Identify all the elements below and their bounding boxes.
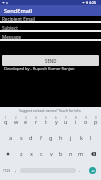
staticText: x	[30, 150, 33, 158]
staticText: 4	[35, 116, 37, 120]
button[interactable]: 9	[81, 114, 91, 130]
staticText: Recipient Email	[2, 16, 35, 21]
button[interactable]: s	[16, 130, 26, 146]
staticText: 7	[65, 116, 67, 120]
staticText: n	[69, 150, 73, 158]
staticText: Suggest contact names? Touch for info.	[19, 108, 82, 113]
button[interactable]: Enter	[89, 167, 96, 174]
staticText: .	[79, 167, 81, 173]
button[interactable]: Comma	[13, 162, 19, 178]
staticText: z	[20, 150, 23, 158]
staticText: 6	[55, 116, 57, 120]
staticText: q	[4, 118, 8, 126]
button[interactable]: c	[36, 146, 46, 162]
staticText: 3	[25, 116, 27, 120]
button[interactable]: 6	[51, 114, 61, 130]
staticText: Subject	[2, 25, 18, 30]
staticText: ?123	[3, 168, 11, 173]
staticText: 4:26	[89, 0, 97, 5]
staticText: v	[50, 150, 53, 158]
staticText: t	[45, 118, 48, 126]
button[interactable]: SendEmail	[0, 5, 101, 16]
staticText: o	[84, 118, 88, 126]
staticText: s	[20, 134, 23, 142]
button[interactable]: d	[26, 130, 36, 146]
button[interactable]: Backspace	[86, 146, 101, 162]
staticText: j	[70, 134, 72, 142]
button[interactable]: h	[56, 130, 66, 146]
staticText: Message	[2, 34, 22, 39]
button[interactable]: Subject	[0, 25, 101, 32]
staticText: 5	[45, 116, 47, 120]
button[interactable]: 5	[41, 114, 51, 130]
staticText: 9	[85, 116, 87, 120]
staticText: Developed by - Rupesh Kumar Ranjan	[4, 66, 75, 71]
button[interactable]: l	[86, 130, 96, 146]
button[interactable]: Period	[77, 162, 83, 178]
button[interactable]: 4	[31, 114, 41, 130]
staticText: e	[24, 118, 28, 126]
staticText: l	[90, 134, 92, 142]
button[interactable]: v	[46, 146, 56, 162]
staticText: r	[35, 118, 38, 126]
staticText: 8	[75, 116, 77, 120]
staticText: b	[59, 150, 63, 158]
staticText: 1	[5, 116, 7, 120]
staticText: u	[64, 118, 68, 126]
staticText: f	[40, 134, 42, 142]
staticText: i	[75, 118, 77, 126]
button[interactable]: 1	[0, 114, 11, 130]
button[interactable]: a	[6, 130, 16, 146]
staticText: h	[59, 134, 63, 142]
button[interactable]: 8	[71, 114, 81, 130]
button[interactable]: 0	[91, 114, 101, 130]
button[interactable]: j	[66, 130, 76, 146]
button[interactable]: n	[66, 146, 76, 162]
button[interactable]: Recipient Email	[0, 16, 101, 23]
staticText: 2	[15, 116, 17, 120]
staticText: SendEmail	[4, 7, 32, 15]
button[interactable]: 2	[11, 114, 21, 130]
staticText: g	[49, 134, 53, 142]
staticText: y	[55, 118, 58, 126]
button[interactable]: g	[46, 130, 56, 146]
button[interactable]: Shift	[0, 146, 16, 162]
button[interactable]: 7	[61, 114, 71, 130]
staticText: ,	[15, 167, 17, 173]
button[interactable]: k	[76, 130, 86, 146]
staticText: a	[9, 134, 13, 142]
staticText: c	[40, 150, 43, 158]
staticText: SEND	[45, 58, 57, 64]
button[interactable]: x	[26, 146, 36, 162]
staticText: w	[14, 118, 19, 126]
button[interactable]: ?123	[0, 162, 13, 178]
button[interactable]: f	[36, 130, 46, 146]
staticText: m	[78, 150, 84, 158]
staticText: 0	[95, 116, 97, 120]
staticText: p	[94, 118, 98, 126]
button[interactable]: Message	[0, 34, 101, 41]
staticText: d	[29, 134, 33, 142]
button[interactable]: z	[16, 146, 26, 162]
button[interactable]: 3	[21, 114, 31, 130]
button[interactable]: m	[76, 146, 86, 162]
button[interactable]: SEND	[2, 55, 99, 66]
button[interactable]: b	[56, 146, 66, 162]
staticText: k	[80, 134, 83, 142]
